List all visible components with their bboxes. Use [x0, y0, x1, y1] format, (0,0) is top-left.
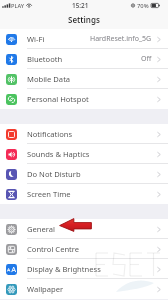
- button[interactable]: Screen Time: [0, 184, 168, 204]
- staticText: Wi-Fi: [27, 34, 45, 44]
- button[interactable]: Notifications: [0, 124, 168, 144]
- staticText: Personal Hotspot: [27, 94, 89, 104]
- staticText: Screen Time: [27, 189, 71, 199]
- button[interactable]: Sounds & Haptics: [0, 144, 168, 164]
- staticText: Do Not Disturb: [27, 169, 81, 179]
- staticText: Display & Brightness: [27, 264, 101, 274]
- staticText: Sounds & Haptics: [27, 149, 90, 159]
- button[interactable]: Personal Hotspot: [0, 89, 168, 109]
- staticText: Settings: [68, 14, 100, 25]
- staticText: Bluetooth: [27, 54, 63, 64]
- staticText: Wallpaper: [27, 284, 64, 294]
- staticText: General: [27, 224, 55, 234]
- button[interactable]: Wallpaper: [0, 279, 168, 299]
- button[interactable]: Control Centre: [0, 239, 168, 259]
- staticText: HardReset.info_5G: [90, 34, 152, 44]
- button[interactable]: Mobile Data: [0, 69, 168, 89]
- staticText: PLAY: [11, 2, 24, 10]
- staticText: 70%: [137, 2, 149, 10]
- staticText: Mobile Data: [27, 74, 71, 84]
- staticText: Off: [141, 54, 152, 64]
- staticText: Notifications: [27, 129, 73, 139]
- button[interactable]: Bluetooth: [0, 49, 168, 69]
- button[interactable]: General: [0, 219, 168, 239]
- staticText: 15:21: [72, 1, 89, 10]
- button[interactable]: Wi-Fi: [0, 29, 168, 49]
- button[interactable]: Display & Brightness: [0, 259, 168, 279]
- button[interactable]: Do Not Disturb: [0, 164, 168, 184]
- staticText: Control Centre: [27, 244, 80, 254]
